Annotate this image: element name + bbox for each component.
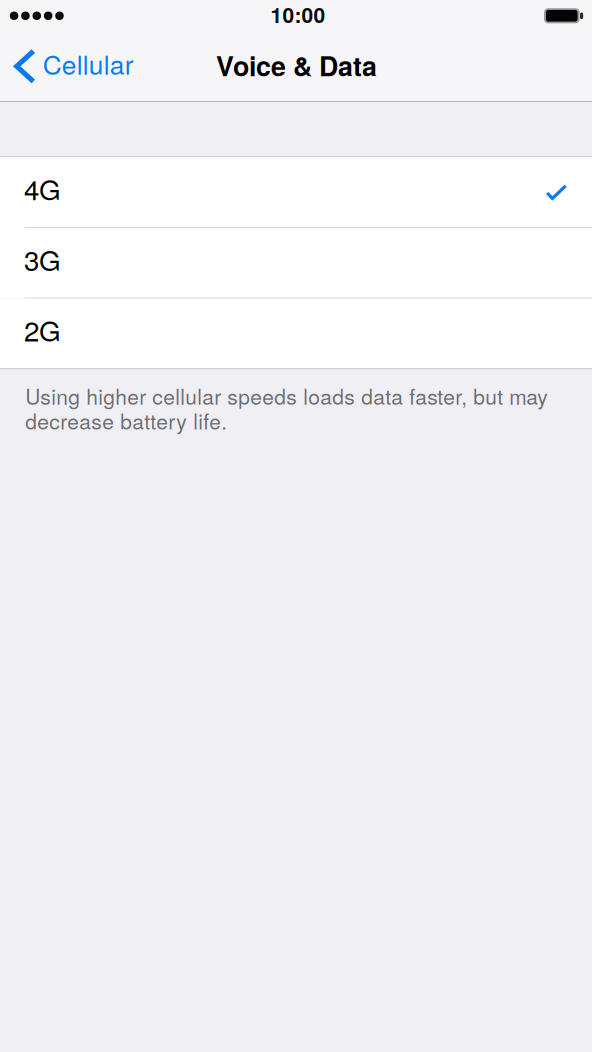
button[interactable]: Cellular bbox=[0, 32, 150, 101]
staticText: 4G bbox=[24, 168, 61, 208]
staticText: 3G bbox=[24, 239, 61, 279]
staticText: Voice & Data bbox=[216, 46, 377, 85]
button[interactable]: 4G bbox=[0, 157, 592, 227]
staticText: Using higher cellular speeds loads data … bbox=[25, 383, 548, 433]
staticText: 2G bbox=[24, 310, 61, 349]
staticText: Cellular bbox=[43, 44, 134, 82]
button[interactable]: 3G bbox=[0, 228, 592, 298]
staticText: 10:00 bbox=[271, 0, 326, 29]
button[interactable]: 2G bbox=[0, 299, 592, 368]
